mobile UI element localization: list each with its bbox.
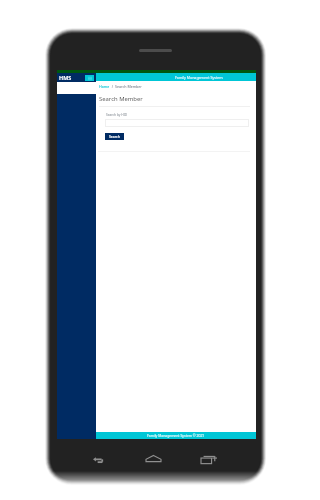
- staticText: Search Member: [99, 95, 143, 103]
- staticText: Search by HID: [106, 113, 128, 117]
- staticText: HMS: [59, 74, 72, 81]
- button[interactable]: HMS: [57, 73, 96, 82]
- button[interactable]: Home: [99, 84, 110, 89]
- staticText: Family Management System © 2021: [147, 433, 205, 438]
- button[interactable]: Family Management System: [175, 75, 223, 80]
- staticText: Family Management System: [175, 75, 223, 80]
- staticText: / Search Member: [110, 84, 142, 89]
- button[interactable]: Back: [90, 452, 106, 467]
- button[interactable]: Menu: [85, 75, 94, 81]
- staticText: Search: [109, 134, 120, 139]
- button[interactable]: Home: [145, 451, 162, 466]
- button[interactable]: [105, 119, 249, 127]
- button[interactable]: Recent apps: [201, 452, 217, 467]
- button[interactable]: Search: [105, 133, 124, 140]
